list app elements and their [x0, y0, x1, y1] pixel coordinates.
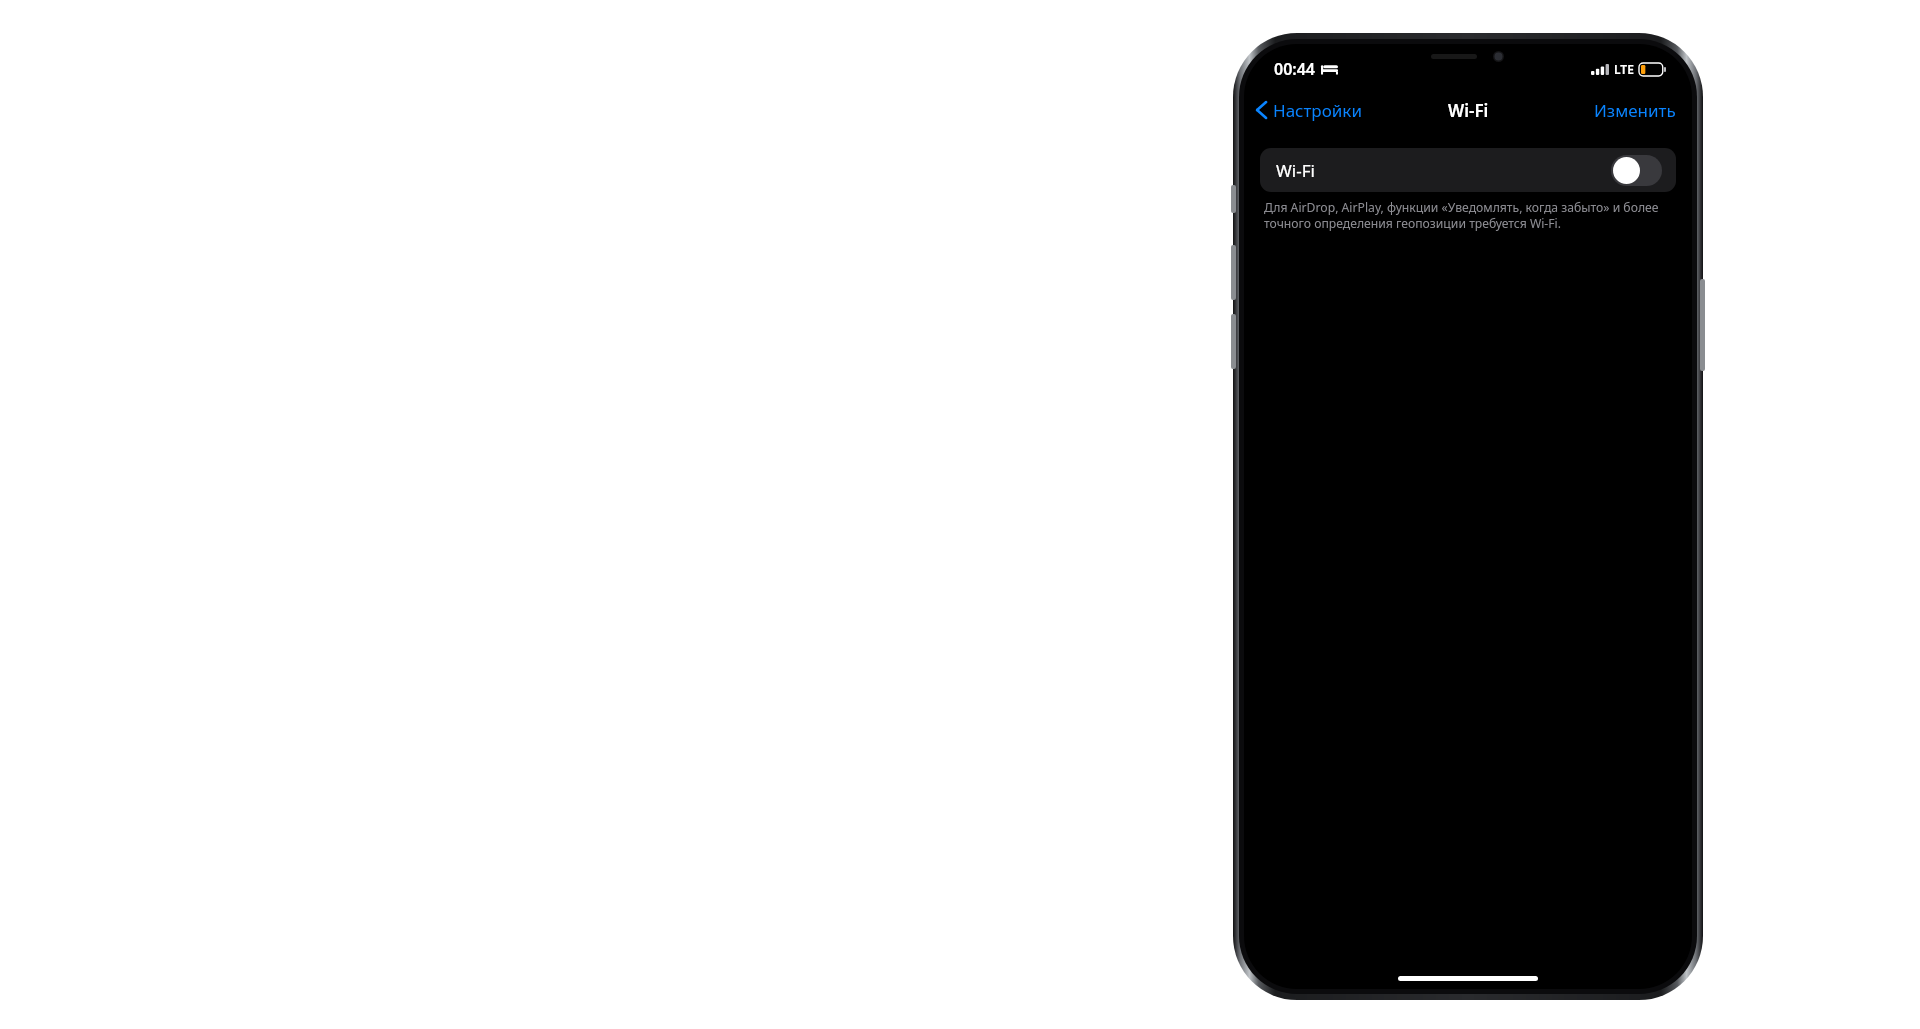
- button[interactable]: Изменить: [1578, 88, 1692, 132]
- button[interactable]: Настройки: [1244, 88, 1372, 132]
- button[interactable]: Wi-Fi toggle, off: [1611, 155, 1662, 186]
- staticText: Настройки: [1273, 99, 1362, 122]
- staticText: LTE: [1614, 61, 1634, 77]
- staticText: Wi-Fi: [1276, 159, 1315, 182]
- staticText: Wi-Fi: [1448, 99, 1489, 122]
- staticText: 00:44: [1274, 58, 1316, 80]
- staticText: Для AirDrop, AirPlay, функции «Уведомлят…: [1264, 199, 1666, 231]
- button[interactable]: Wi-Fi: [1260, 148, 1676, 192]
- staticText: Изменить: [1594, 99, 1676, 122]
